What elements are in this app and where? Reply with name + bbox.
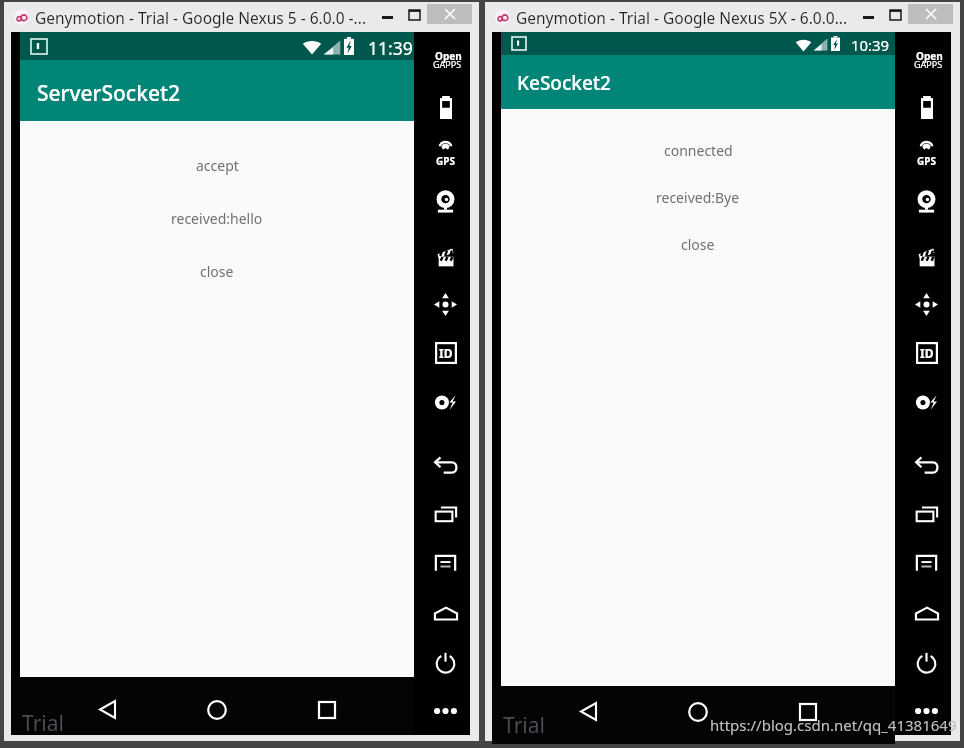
button[interactable]: Back <box>83 686 131 733</box>
button[interactable]: Back <box>905 444 948 486</box>
staticText: received:hello <box>171 209 263 228</box>
button[interactable]: D-pad <box>905 283 948 325</box>
button[interactable]: Recent apps <box>784 688 832 735</box>
button[interactable]: Battery <box>905 86 948 128</box>
staticText: GPS <box>436 154 455 168</box>
staticText: close <box>681 235 715 254</box>
staticText: received:Bye <box>656 188 740 207</box>
button[interactable]: Minimize <box>371 3 403 31</box>
button[interactable]: Disk IO <box>905 381 948 423</box>
staticText: accept <box>196 156 239 175</box>
button[interactable]: Power <box>905 641 948 683</box>
button[interactable]: GPS <box>424 134 467 176</box>
staticText: close <box>200 262 234 281</box>
button[interactable]: Home <box>674 688 722 735</box>
button[interactable]: Identifiers <box>905 332 948 374</box>
staticText: Genymotion - Trial - Google Nexus 5X - 6… <box>516 7 848 28</box>
staticText: Genymotion - Trial - Google Nexus 5 - 6.… <box>35 7 367 28</box>
staticText: GAPPS <box>914 58 943 70</box>
staticText: Open <box>916 49 943 63</box>
button[interactable]: Camera <box>424 181 467 223</box>
staticText: 10:39 <box>851 35 890 55</box>
button[interactable]: Screen record <box>424 235 467 277</box>
button[interactable]: Battery <box>424 86 467 128</box>
staticText: GAPPS <box>433 58 462 70</box>
button[interactable]: D-pad <box>424 283 467 325</box>
button[interactable]: Recent apps <box>303 686 351 733</box>
button[interactable]: Back <box>424 444 467 486</box>
staticText: ID <box>920 345 934 361</box>
button[interactable]: Screen record <box>905 235 948 277</box>
button[interactable]: Back <box>564 688 612 735</box>
staticText: https://blog.csdn.net/qq_41381649 <box>710 715 957 735</box>
staticText: ID <box>439 345 453 361</box>
button[interactable]: Home <box>905 592 948 634</box>
button[interactable]: Recent apps <box>424 493 467 535</box>
button[interactable]: Camera <box>905 181 948 223</box>
button[interactable]: Menu <box>905 542 948 584</box>
button[interactable]: More <box>905 690 948 732</box>
staticText: GPS <box>917 154 936 168</box>
staticText: 11:39 <box>368 36 413 60</box>
staticText: Open <box>435 49 462 63</box>
button[interactable]: Close <box>908 4 953 24</box>
button[interactable]: Home <box>193 686 241 733</box>
button[interactable]: Minimize <box>852 3 884 31</box>
staticText: Trial <box>503 711 545 740</box>
button[interactable]: Menu <box>424 542 467 584</box>
button[interactable]: Home <box>424 592 467 634</box>
staticText: Trial <box>22 709 64 738</box>
staticText: ServerSocket2 <box>37 79 181 108</box>
button[interactable]: GPS <box>905 134 948 176</box>
button[interactable]: Power <box>424 641 467 683</box>
button[interactable]: Maximize <box>881 2 909 27</box>
button[interactable]: More <box>424 690 467 732</box>
button[interactable]: Close <box>427 4 472 24</box>
button[interactable]: Maximize <box>400 2 428 27</box>
staticText: KeSocket2 <box>517 70 611 96</box>
button[interactable]: Recent apps <box>905 493 948 535</box>
button[interactable]: Disk IO <box>424 381 467 423</box>
button[interactable]: Identifiers <box>424 332 467 374</box>
staticText: connected <box>664 141 733 160</box>
